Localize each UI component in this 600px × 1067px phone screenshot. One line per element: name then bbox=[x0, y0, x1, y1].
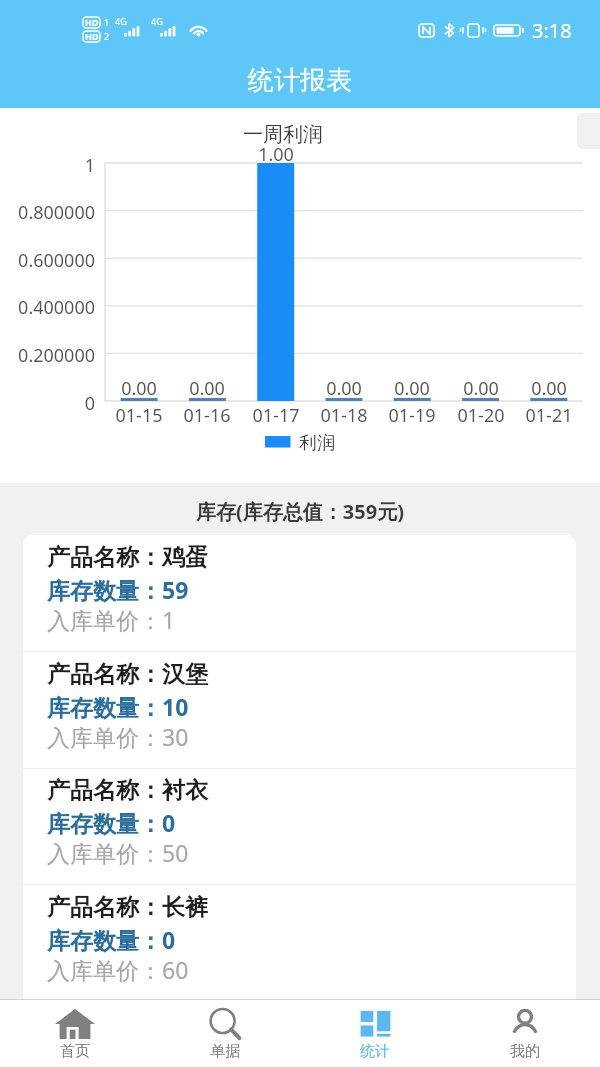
staticText: 利润 bbox=[299, 432, 335, 455]
staticText: 库存数量：0 bbox=[47, 807, 176, 838]
staticText: 01-21 bbox=[514, 403, 584, 428]
button[interactable]: Orders bbox=[150, 1000, 300, 1067]
button[interactable]: 产品名称：长裤 bbox=[23, 885, 576, 999]
staticText: 库存数量：59 bbox=[47, 574, 189, 605]
staticText: 4G bbox=[115, 15, 127, 27]
staticText: 统计 bbox=[360, 1042, 390, 1061]
staticText: 3:18 bbox=[532, 17, 572, 44]
staticText: 产品名称：衬衣 bbox=[47, 776, 208, 805]
staticText: 入库单价：50 bbox=[47, 837, 189, 868]
staticText: 01-16 bbox=[172, 403, 242, 428]
button[interactable]: 产品名称：衬衣 bbox=[23, 768, 576, 885]
staticText: 一周利润 bbox=[0, 122, 583, 147]
staticText: HD bbox=[85, 16, 99, 28]
staticText: 1 bbox=[0, 153, 95, 178]
staticText: 0.800000 bbox=[0, 200, 95, 225]
button[interactable]: Home bbox=[0, 1000, 150, 1067]
staticText: 01-17 bbox=[241, 403, 311, 428]
staticText: 库存数量：0 bbox=[47, 924, 176, 955]
staticText: 1.00 bbox=[241, 142, 311, 167]
button[interactable]: Mine bbox=[450, 1000, 600, 1067]
staticText: 首页 bbox=[60, 1042, 90, 1061]
button[interactable]: Statistics bbox=[300, 1000, 450, 1067]
staticText: 产品名称：汉堡 bbox=[47, 660, 208, 689]
staticText: 单据 bbox=[210, 1042, 240, 1061]
staticText: 0.600000 bbox=[0, 248, 95, 273]
staticText: 01-18 bbox=[309, 403, 379, 428]
staticText: 0.400000 bbox=[0, 295, 95, 320]
staticText: 2 bbox=[104, 30, 110, 42]
staticText: 0.200000 bbox=[0, 343, 95, 368]
staticText: 0.00 bbox=[309, 376, 379, 401]
staticText: 01-19 bbox=[377, 403, 447, 428]
staticText: 入库单价：60 bbox=[47, 954, 189, 985]
staticText: 0.00 bbox=[104, 376, 174, 401]
staticText: 01-15 bbox=[104, 403, 174, 428]
staticText: 我的 bbox=[510, 1042, 540, 1061]
staticText: 统计报表 bbox=[0, 64, 600, 97]
staticText: 4G bbox=[151, 15, 163, 27]
staticText: 01-20 bbox=[446, 403, 516, 428]
button[interactable]: 产品名称：汉堡 bbox=[23, 652, 576, 769]
staticText: 入库单价：1 bbox=[47, 604, 176, 635]
staticText: 0.00 bbox=[514, 376, 584, 401]
staticText: HD bbox=[85, 30, 99, 42]
staticText: 库存数量：10 bbox=[47, 691, 189, 722]
staticText: 0.00 bbox=[172, 376, 242, 401]
staticText: 0 bbox=[0, 391, 95, 416]
staticText: 产品名称：鸡蛋 bbox=[47, 543, 208, 572]
staticText: 入库单价：30 bbox=[47, 721, 189, 752]
staticText: 产品名称：长裤 bbox=[47, 893, 208, 922]
button[interactable]: 产品名称：鸡蛋 bbox=[23, 535, 576, 652]
staticText: 1 bbox=[104, 16, 110, 28]
staticText: 0.00 bbox=[377, 376, 447, 401]
staticText: 库存(库存总值：359元) bbox=[0, 498, 600, 525]
staticText: 0.00 bbox=[446, 376, 516, 401]
